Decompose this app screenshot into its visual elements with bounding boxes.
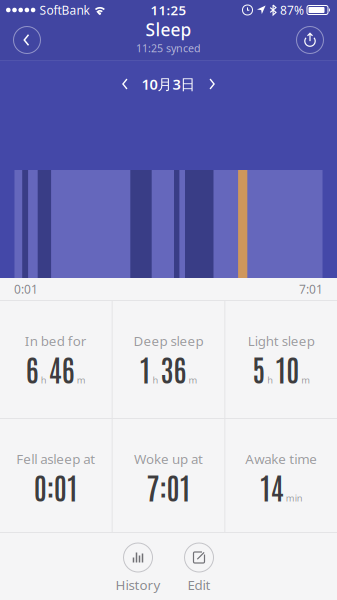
staticText: History: [115, 576, 160, 594]
staticText: 5: [252, 350, 265, 388]
staticText: Fell asleep at: [16, 450, 95, 468]
button[interactable]: Next day: [204, 73, 218, 95]
staticText: 46: [49, 350, 75, 388]
staticText: 6: [26, 350, 39, 388]
staticText: 11:25: [150, 1, 186, 19]
staticText: 0:01: [14, 281, 38, 297]
staticText: SoftBank: [39, 2, 89, 18]
staticText: m: [301, 374, 310, 386]
staticText: m: [188, 374, 197, 386]
staticText: Light sleep: [248, 332, 315, 350]
staticText: 11:25 synced: [136, 41, 201, 55]
staticText: 7:01: [146, 468, 190, 506]
staticText: 10: [275, 350, 299, 388]
staticText: Edit: [187, 576, 210, 594]
staticText: 87%: [280, 2, 304, 18]
staticText: 0:01: [34, 468, 78, 506]
staticText: h: [41, 374, 47, 386]
staticText: h: [267, 374, 273, 386]
staticText: Awake time: [245, 450, 317, 468]
staticText: m: [77, 374, 86, 386]
staticText: 7:01: [299, 281, 323, 297]
staticText: min: [286, 492, 303, 504]
staticText: Woke up at: [134, 450, 203, 468]
staticText: 10月3日: [141, 74, 195, 94]
staticText: 36: [160, 350, 186, 388]
button[interactable]: Back: [12, 25, 42, 55]
staticText: Sleep: [145, 18, 191, 41]
button[interactable]: Previous day: [118, 73, 132, 95]
staticText: 1: [139, 350, 150, 388]
staticText: In bed for: [25, 332, 87, 350]
staticText: Deep sleep: [133, 332, 203, 350]
staticText: h: [152, 374, 158, 386]
button[interactable]: Share: [295, 25, 325, 55]
staticText: 14: [260, 468, 284, 506]
button[interactable]: History: [107, 543, 168, 594]
button[interactable]: Edit: [168, 543, 229, 594]
